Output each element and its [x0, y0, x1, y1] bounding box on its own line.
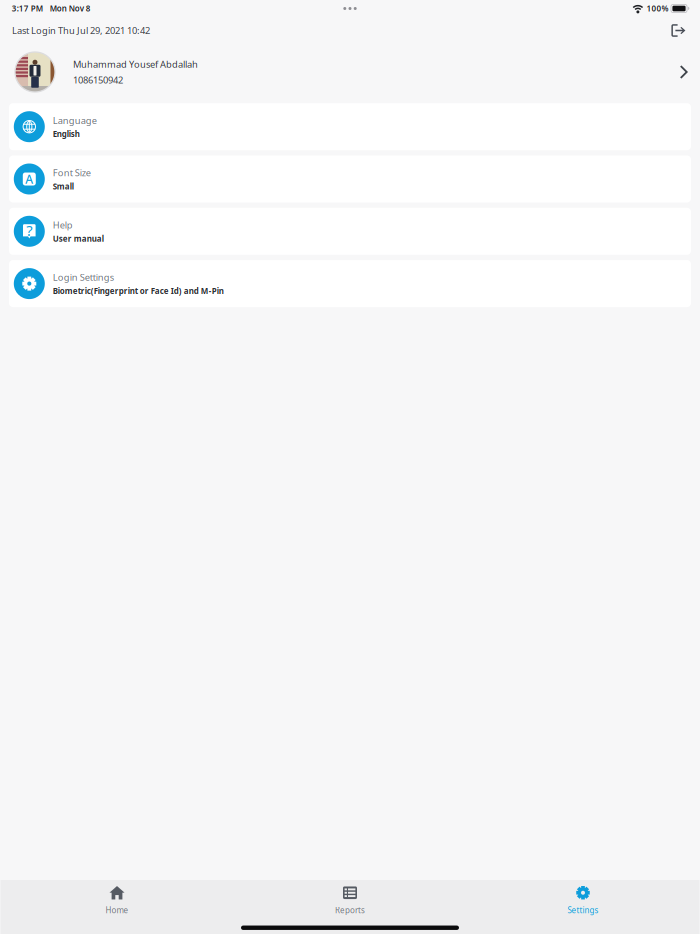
button[interactable]: ?: [9, 208, 691, 255]
staticText: Settings: [567, 905, 598, 915]
staticText: Last Login Thu Jul 29, 2021 10:42: [12, 24, 150, 37]
staticText: Help: [53, 219, 73, 231]
button[interactable]: Settings: [466, 883, 699, 917]
button[interactable]: Home: [0, 883, 233, 917]
staticText: 100%: [646, 3, 668, 14]
staticText: User manual: [53, 233, 104, 244]
staticText: 3:17 PM: [12, 3, 43, 14]
staticText: Muhammad Yousef Abdallah: [73, 58, 198, 70]
staticText: Font Size: [53, 166, 91, 179]
button[interactable]: Log out: [665, 19, 691, 41]
staticText: Language: [53, 114, 97, 126]
staticText: A: [25, 171, 33, 187]
staticText: English: [53, 129, 80, 139]
button[interactable]: Muhammad Yousef Abdallah: [0, 44, 700, 100]
staticText: ?: [26, 221, 32, 240]
staticText: Small: [53, 181, 74, 192]
staticText: Home: [105, 905, 128, 915]
button[interactable]: Login Settings: [9, 260, 691, 307]
button[interactable]: Language: [9, 103, 691, 150]
staticText: 1086150942: [73, 74, 123, 86]
button[interactable]: A: [9, 155, 691, 202]
staticText: Reports: [335, 905, 365, 915]
button[interactable]: Reports: [233, 883, 466, 917]
staticText: Biometric(Fingerprint or Face Id) and M-…: [53, 286, 224, 296]
staticText: Mon Nov 8: [50, 3, 91, 14]
staticText: Login Settings: [53, 271, 114, 283]
